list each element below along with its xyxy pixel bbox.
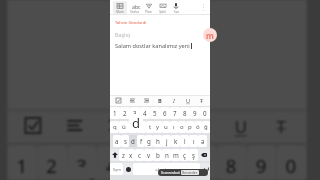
staticText: 7 bbox=[173, 109, 177, 117]
button[interactable]: s bbox=[121, 135, 129, 147]
button[interactable]: ü bbox=[119, 121, 128, 133]
button[interactable]: 6 bbox=[160, 107, 170, 119]
button[interactable]: ◂ Azərbaycan ▸ bbox=[133, 163, 200, 175]
button[interactable]: ğ bbox=[202, 121, 210, 133]
button[interactable]: m bbox=[171, 149, 180, 161]
button[interactable]: Bullet list bbox=[125, 95, 139, 106]
button[interactable]: ə bbox=[198, 135, 207, 147]
staticText: ğ bbox=[204, 123, 208, 131]
button[interactable]: I bbox=[167, 95, 181, 106]
button[interactable]: x bbox=[127, 149, 135, 161]
staticText: b bbox=[156, 151, 160, 159]
button[interactable]: 2 bbox=[37, 145, 67, 180]
staticText: 2 bbox=[123, 109, 127, 117]
button[interactable]: Backspace bbox=[198, 149, 210, 161]
button[interactable]: 0 bbox=[200, 107, 210, 119]
button[interactable]: 6 bbox=[157, 145, 187, 180]
button[interactable]: U bbox=[181, 95, 195, 106]
button[interactable]: ş bbox=[189, 149, 198, 161]
button[interactable]: 9 bbox=[247, 145, 277, 180]
button[interactable]: 0 bbox=[277, 145, 306, 180]
button[interactable]: 1 bbox=[110, 107, 120, 119]
button[interactable]: o bbox=[178, 121, 186, 133]
button[interactable]: k bbox=[171, 135, 180, 147]
button[interactable]: z bbox=[119, 149, 127, 161]
button[interactable]: 8 bbox=[180, 107, 190, 119]
button[interactable]: Shift bbox=[110, 149, 119, 161]
button[interactable]: ı bbox=[170, 121, 178, 133]
button[interactable]: c bbox=[135, 149, 144, 161]
button[interactable]: Plan bbox=[141, 1, 155, 14]
button[interactable]: ı bbox=[189, 135, 198, 147]
button[interactable]: e bbox=[128, 121, 137, 133]
button[interactable]: abc bbox=[127, 1, 141, 14]
button[interactable]: 1 bbox=[7, 145, 37, 180]
button[interactable]: 4 bbox=[140, 107, 150, 119]
button[interactable]: 5 bbox=[127, 145, 157, 180]
button[interactable]: a bbox=[113, 135, 121, 147]
staticText: o bbox=[180, 123, 184, 131]
button[interactable]: 2 bbox=[120, 107, 130, 119]
button[interactable]: r bbox=[137, 121, 146, 133]
staticText: ö bbox=[196, 123, 200, 131]
staticText: 7 bbox=[196, 151, 208, 176]
button[interactable]: Enter bbox=[200, 163, 210, 175]
staticText: U bbox=[186, 97, 191, 105]
button[interactable]: Checklist bbox=[111, 95, 125, 106]
button[interactable]: Səs bbox=[169, 1, 183, 14]
button[interactable]: u bbox=[162, 121, 170, 133]
button[interactable]: 7 bbox=[187, 145, 217, 180]
button[interactable]: Checklist bbox=[10, 109, 52, 142]
button[interactable]: g bbox=[145, 135, 153, 147]
staticText: U bbox=[235, 115, 250, 139]
button[interactable]: More options bbox=[196, 0, 210, 15]
button[interactable]: B bbox=[153, 95, 167, 106]
staticText: 9 bbox=[256, 151, 268, 176]
button[interactable]: T bbox=[262, 109, 303, 142]
staticText: 1 bbox=[113, 109, 117, 117]
button[interactable]: h bbox=[153, 135, 162, 147]
button[interactable]: 8 bbox=[217, 145, 247, 180]
staticText: v bbox=[147, 151, 151, 159]
button[interactable]: ç bbox=[180, 149, 189, 161]
button[interactable]: T bbox=[195, 95, 209, 106]
staticText: ü bbox=[122, 123, 126, 131]
staticText: 0 bbox=[286, 151, 298, 176]
button[interactable]: Bullet list bbox=[52, 109, 94, 142]
staticText: 3 bbox=[76, 151, 88, 176]
button[interactable]: ö bbox=[194, 121, 202, 133]
button[interactable]: l bbox=[180, 135, 189, 147]
staticText: 5 bbox=[153, 109, 157, 117]
button[interactable]: f bbox=[137, 135, 145, 147]
button[interactable]: v bbox=[144, 149, 153, 161]
staticText: z bbox=[122, 151, 125, 159]
staticText: 8 bbox=[183, 109, 187, 117]
button[interactable]: B bbox=[136, 109, 178, 142]
staticText: 1 bbox=[16, 151, 28, 176]
button[interactable]: p bbox=[186, 121, 194, 133]
staticText: Mətn bbox=[116, 10, 124, 14]
button[interactable]: 3 bbox=[67, 145, 97, 180]
button[interactable]: 3 bbox=[130, 107, 140, 119]
button[interactable]: Numbered list bbox=[94, 109, 136, 142]
button[interactable]: d bbox=[129, 135, 137, 147]
button[interactable]: q bbox=[110, 121, 119, 133]
button[interactable]: Şəkil bbox=[155, 1, 169, 14]
button[interactable]: 5 bbox=[150, 107, 160, 119]
button[interactable]: j bbox=[162, 135, 171, 147]
button[interactable]: Numbered list bbox=[139, 95, 153, 106]
button[interactable]: y bbox=[154, 121, 162, 133]
button[interactable]: U bbox=[220, 109, 262, 142]
staticText: k bbox=[174, 137, 178, 145]
button[interactable]: 4 bbox=[97, 145, 127, 180]
button[interactable]: Emoji bbox=[123, 163, 133, 175]
button[interactable]: 9 bbox=[190, 107, 200, 119]
button[interactable]: I bbox=[178, 109, 220, 142]
button[interactable]: Sym bbox=[110, 163, 123, 175]
button[interactable]: Mətn bbox=[113, 1, 127, 14]
button[interactable]: 7 bbox=[170, 107, 180, 119]
button[interactable]: n bbox=[162, 149, 171, 161]
button[interactable]: t bbox=[146, 121, 154, 133]
button[interactable]: b bbox=[153, 149, 162, 161]
